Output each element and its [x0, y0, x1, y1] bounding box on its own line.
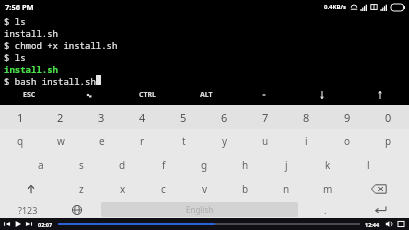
staticText: u — [262, 134, 269, 148]
button[interactable]: 6 — [204, 105, 245, 129]
button[interactable]: o — [327, 129, 368, 153]
button[interactable]: m — [307, 177, 348, 201]
staticText: 7:56 PM — [5, 2, 34, 12]
staticText: $ ls — [4, 15, 26, 27]
button[interactable]: t — [163, 129, 204, 153]
button[interactable]: 8 — [286, 105, 327, 129]
staticText: n — [283, 182, 290, 196]
staticText: ALT — [200, 90, 213, 100]
button[interactable]: Tab — [59, 85, 118, 105]
button[interactable]: q — [0, 129, 40, 153]
button[interactable]: 7 — [245, 105, 286, 129]
staticText: English — [186, 204, 214, 215]
button[interactable]: Next — [25, 220, 33, 228]
button[interactable]: w — [40, 129, 81, 153]
button[interactable]: Shift — [0, 177, 61, 201]
button[interactable]: i — [286, 129, 327, 153]
button[interactable]: y — [204, 129, 245, 153]
button[interactable]: l — [348, 153, 389, 177]
button[interactable]: 4 — [122, 105, 163, 129]
staticText: i — [305, 134, 308, 148]
staticText: q — [17, 134, 24, 148]
button[interactable]: k — [307, 153, 348, 177]
button[interactable]: 9 — [327, 105, 368, 129]
button[interactable]: Backspace — [348, 177, 409, 201]
button[interactable]: ALT — [177, 85, 235, 105]
staticText: j — [285, 158, 288, 172]
button[interactable]: c — [143, 177, 184, 201]
staticText: k — [325, 158, 331, 172]
button[interactable]: v — [184, 177, 225, 201]
button[interactable]: Arrow up — [351, 85, 409, 105]
staticText: w — [57, 134, 65, 148]
staticText: $ ls — [4, 51, 26, 63]
button[interactable]: h — [225, 153, 266, 177]
staticText: 4 — [139, 110, 146, 125]
button[interactable]: n — [266, 177, 307, 201]
staticText: h — [242, 158, 249, 172]
button[interactable]: Play — [14, 220, 22, 228]
staticText: p — [385, 134, 392, 148]
button[interactable]: . — [300, 201, 351, 218]
staticText: e — [99, 134, 105, 148]
button[interactable]: r — [122, 129, 163, 153]
button[interactable]: Minus — [235, 85, 293, 105]
staticText: CTRL — [139, 90, 157, 100]
staticText: 5 — [180, 110, 187, 125]
staticText: 1 — [17, 110, 24, 125]
button[interactable]: d — [102, 153, 143, 177]
button[interactable]: Arrow down — [293, 85, 351, 105]
staticText: l — [367, 158, 370, 172]
button[interactable]: Enter — [351, 201, 409, 218]
button[interactable]: Previous — [3, 220, 11, 228]
button[interactable]: s — [61, 153, 102, 177]
button[interactable]: u — [245, 129, 286, 153]
button[interactable]: 1 — [0, 105, 40, 129]
staticText: t — [182, 134, 186, 148]
button[interactable]: g — [184, 153, 225, 177]
staticText: 2 — [57, 110, 64, 125]
staticText: v — [202, 182, 208, 196]
staticText: install.sh — [4, 63, 59, 75]
staticText: 7 — [262, 110, 269, 125]
button[interactable]: ESC — [0, 85, 59, 105]
button[interactable]: 2 — [40, 105, 81, 129]
staticText: . — [324, 204, 327, 216]
staticText: y — [222, 134, 228, 148]
button[interactable]: English — [101, 202, 298, 217]
button[interactable]: 3 — [81, 105, 122, 129]
staticText: 9 — [344, 110, 351, 125]
button[interactable]: j — [266, 153, 307, 177]
staticText: d — [119, 158, 126, 172]
button[interactable]: Volume — [385, 220, 393, 228]
staticText: z — [79, 182, 84, 196]
staticText: s — [79, 158, 84, 172]
button[interactable]: Change language — [55, 201, 99, 218]
button[interactable]: x — [102, 177, 143, 201]
staticText: 0.4KB/s — [324, 3, 347, 11]
staticText: 02:07 — [38, 221, 53, 228]
staticText: 6 — [221, 110, 228, 125]
button[interactable]: 0 — [368, 105, 409, 129]
staticText: f — [162, 158, 166, 172]
staticText: 3 — [98, 110, 105, 125]
button[interactable]: a — [20, 153, 61, 177]
staticText: o — [344, 134, 351, 148]
button[interactable]: e — [81, 129, 122, 153]
staticText: $ chmod +x install.sh — [4, 39, 118, 51]
button[interactable]: p — [368, 129, 409, 153]
button[interactable]: z — [61, 177, 102, 201]
staticText: g — [201, 158, 208, 172]
button[interactable]: b — [225, 177, 266, 201]
button[interactable]: Fullscreen — [397, 220, 405, 228]
button[interactable]: ?123 — [0, 201, 55, 218]
staticText: $ bash install.sh — [4, 75, 96, 85]
staticText: 8 — [303, 110, 310, 125]
staticText: install.sh — [4, 27, 59, 39]
button[interactable]: f — [143, 153, 184, 177]
button[interactable]: CTRL — [118, 85, 177, 105]
staticText: 0 — [385, 110, 392, 125]
staticText: b — [242, 182, 249, 196]
staticText: ESC — [23, 90, 36, 100]
button[interactable]: 5 — [163, 105, 204, 129]
